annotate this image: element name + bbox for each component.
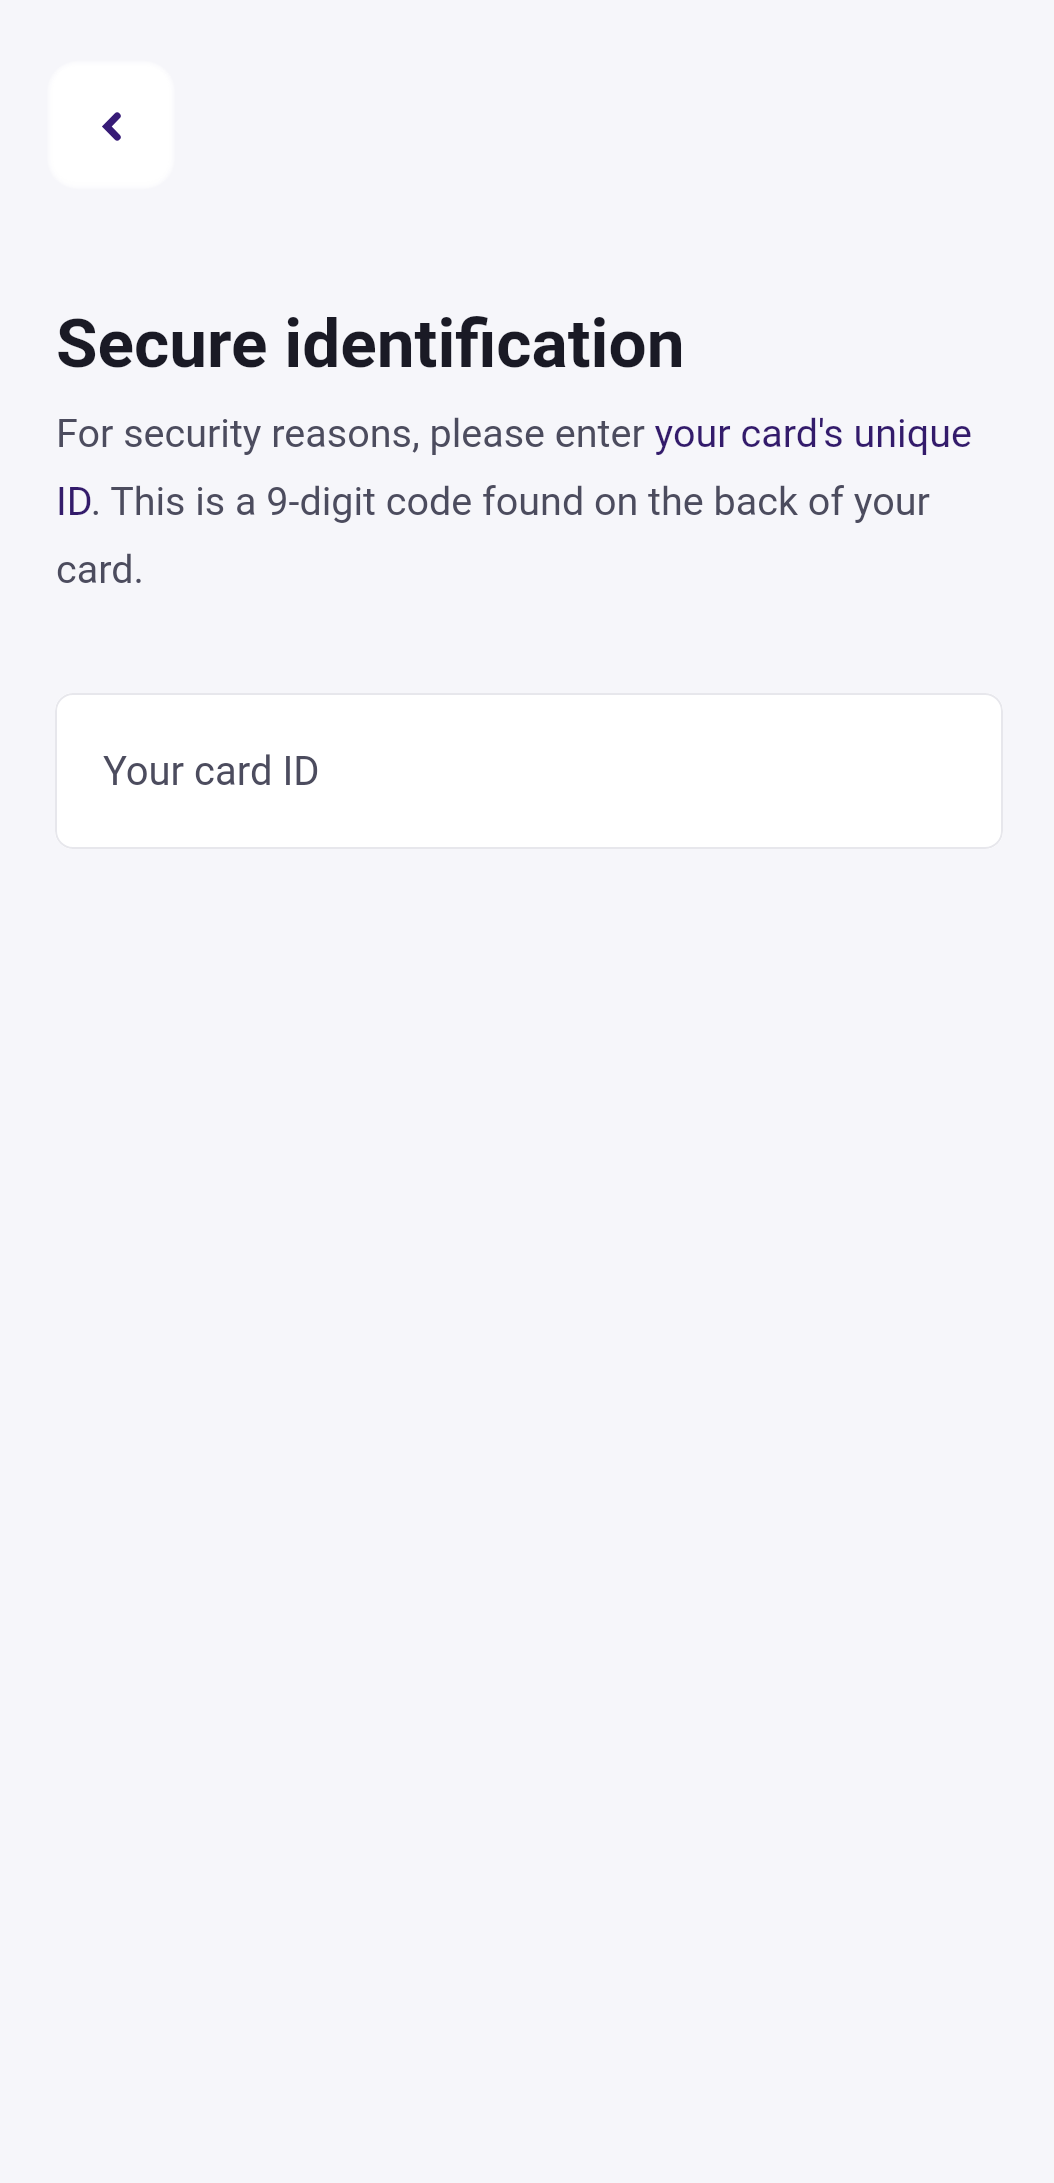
button[interactable]: Your card ID <box>55 693 1003 849</box>
button[interactable]: Back <box>53 66 169 182</box>
staticText: For security reasons, please enter your … <box>56 410 1004 592</box>
staticText: Your card ID <box>103 748 320 795</box>
staticText: Secure identification <box>56 304 685 383</box>
